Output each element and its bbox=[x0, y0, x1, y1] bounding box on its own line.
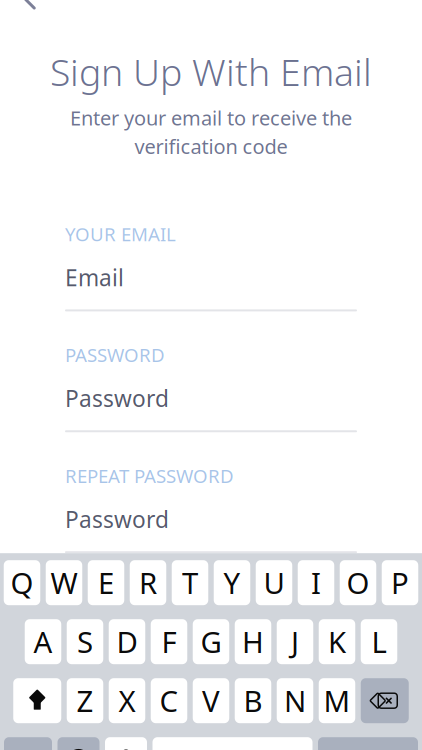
button[interactable]: H bbox=[235, 619, 271, 664]
staticText: A bbox=[33, 622, 52, 661]
button[interactable]: Next bbox=[318, 737, 418, 750]
button[interactable]: J bbox=[277, 619, 313, 664]
staticText: B bbox=[243, 681, 262, 720]
button[interactable]: V bbox=[193, 678, 229, 723]
staticText: G bbox=[200, 622, 221, 661]
button[interactable]: C bbox=[151, 678, 187, 723]
button[interactable]: P bbox=[382, 560, 418, 605]
button[interactable]: Shift bbox=[13, 678, 61, 723]
staticText: I bbox=[311, 563, 321, 602]
staticText: S bbox=[77, 622, 93, 661]
button[interactable]: Next keyboard bbox=[57, 737, 99, 750]
staticText: YOUR EMAIL bbox=[65, 221, 176, 246]
button[interactable]: Back bbox=[8, 0, 52, 21]
button[interactable]: W bbox=[46, 560, 82, 605]
staticText: Y bbox=[223, 563, 240, 602]
button[interactable]: B bbox=[235, 678, 271, 723]
button[interactable]: T bbox=[172, 560, 208, 605]
button[interactable]: Dictation bbox=[105, 737, 147, 750]
staticText: Email bbox=[65, 262, 124, 292]
staticText: Sign Up With Email bbox=[50, 47, 372, 96]
button[interactable]: F bbox=[151, 619, 187, 664]
staticText: E bbox=[98, 563, 114, 602]
button[interactable]: N bbox=[277, 678, 313, 723]
staticText: X bbox=[118, 681, 135, 720]
staticText: R bbox=[139, 563, 157, 602]
button[interactable]: M bbox=[319, 678, 355, 723]
staticText: P bbox=[391, 563, 409, 602]
staticText: L bbox=[371, 622, 386, 661]
staticText: H bbox=[242, 622, 264, 661]
button[interactable]: K bbox=[319, 619, 355, 664]
button[interactable]: Z bbox=[67, 678, 103, 723]
button[interactable]: O bbox=[340, 560, 376, 605]
button[interactable]: 123 bbox=[4, 737, 52, 750]
button[interactable]: PASSWORD bbox=[65, 342, 357, 432]
button[interactable]: S bbox=[67, 619, 103, 664]
staticText: K bbox=[328, 622, 346, 661]
staticText: Password bbox=[65, 383, 169, 413]
button[interactable]: Y bbox=[214, 560, 250, 605]
button[interactable]: YOUR EMAIL bbox=[65, 221, 357, 311]
button[interactable]: R bbox=[130, 560, 166, 605]
button[interactable]: G bbox=[193, 619, 229, 664]
button[interactable]: D bbox=[109, 619, 145, 664]
button[interactable]: Q bbox=[4, 560, 40, 605]
staticText: W bbox=[50, 563, 77, 602]
staticText: verification code bbox=[134, 133, 287, 160]
staticText: T bbox=[182, 563, 198, 602]
staticText: V bbox=[202, 681, 220, 720]
staticText: REPEAT PASSWORD bbox=[65, 463, 234, 488]
staticText: C bbox=[159, 681, 178, 720]
staticText: D bbox=[116, 622, 137, 661]
staticText: J bbox=[291, 622, 299, 661]
button[interactable]: L bbox=[361, 619, 397, 664]
staticText: O bbox=[346, 563, 369, 602]
button[interactable]: U bbox=[256, 560, 292, 605]
staticText: U bbox=[263, 563, 284, 602]
button[interactable]: E bbox=[88, 560, 124, 605]
staticText: Password bbox=[65, 504, 169, 534]
staticText: Q bbox=[10, 563, 33, 602]
button[interactable]: Delete bbox=[361, 678, 409, 723]
button[interactable]: X bbox=[109, 678, 145, 723]
staticText: Enter your email to receive the bbox=[70, 104, 352, 131]
staticText: F bbox=[161, 622, 176, 661]
staticText: M bbox=[323, 681, 350, 720]
button[interactable]: I bbox=[298, 560, 334, 605]
staticText: N bbox=[284, 681, 306, 720]
staticText: Z bbox=[76, 681, 93, 720]
button[interactable]: space bbox=[152, 737, 312, 750]
button[interactable]: A bbox=[25, 619, 61, 664]
staticText: PASSWORD bbox=[65, 342, 165, 367]
button[interactable]: REPEAT PASSWORD bbox=[65, 463, 357, 553]
